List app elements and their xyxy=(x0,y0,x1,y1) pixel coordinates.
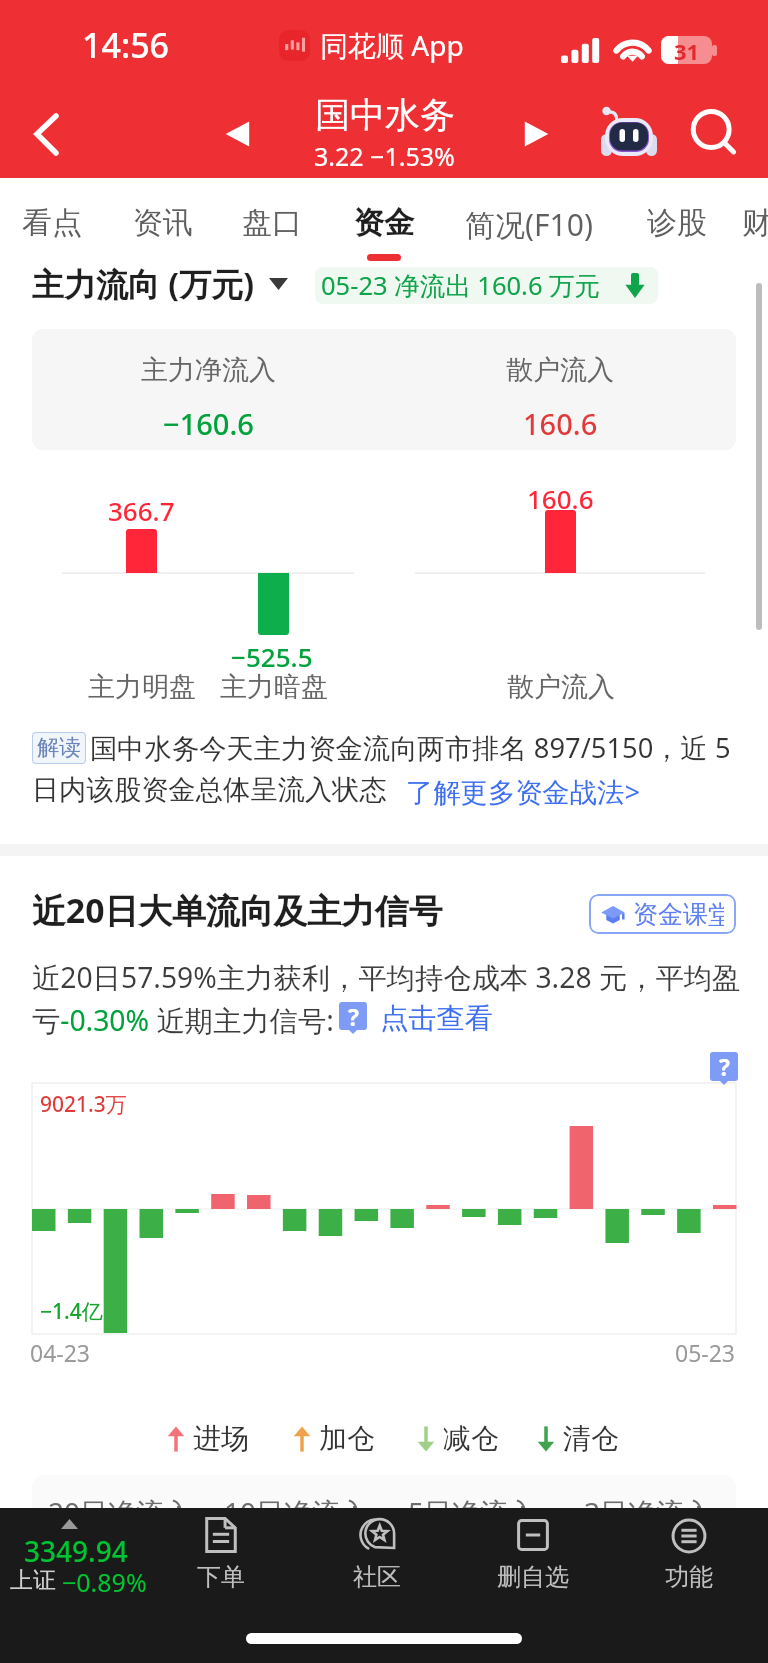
button[interactable]: 功能 xyxy=(634,1508,744,1608)
staticText: 简况(F10) xyxy=(465,204,593,245)
staticText: 功能 xyxy=(665,1562,713,1592)
staticText: 删自选 xyxy=(497,1562,569,1592)
staticText: 9021.3万 xyxy=(40,1090,127,1119)
staticText: 资讯 xyxy=(133,204,193,242)
button[interactable]: 清仓 xyxy=(537,1421,619,1456)
button[interactable]: Previous stock xyxy=(210,106,266,162)
staticText: 解读 xyxy=(37,734,81,762)
button[interactable]: AI assistant xyxy=(596,90,662,178)
staticText: 资金课堂 xyxy=(633,899,724,930)
staticText: 国中水务 xyxy=(315,93,455,137)
staticText: 近20日大单流向及主力信号 xyxy=(32,887,443,933)
staticText: 下单 xyxy=(197,1562,245,1592)
button[interactable]: 05-23 净流出 160.6 万元 xyxy=(315,267,658,304)
staticText: 散户流入 xyxy=(507,670,615,704)
staticText: 资金 xyxy=(354,204,414,242)
button[interactable]: 资金课堂 xyxy=(589,894,736,934)
staticText: 亏-0.30% 近期主力信号: xyxy=(32,1001,334,1040)
staticText: 3349.94 xyxy=(24,1532,128,1570)
button[interactable]: Search xyxy=(686,106,742,162)
staticText: 3日净流入 xyxy=(584,1493,713,1531)
button[interactable]: 诊股 xyxy=(623,178,731,262)
staticText: 日内该股资金总体呈流入状态 xyxy=(32,773,387,807)
staticText: 3.22 −1.53% xyxy=(314,139,455,173)
staticText: −525.5 xyxy=(231,639,313,674)
staticText: 160.6 xyxy=(523,404,598,443)
staticText: −0.89% xyxy=(62,1565,147,1599)
button[interactable]: 资讯 xyxy=(109,178,217,262)
staticText: 04-23 xyxy=(30,1337,91,1368)
button[interactable]: 加仓 xyxy=(293,1421,375,1456)
staticText: 看点 xyxy=(22,204,82,242)
staticText: 5日净流入 xyxy=(408,1493,537,1531)
button[interactable]: 点击查看 xyxy=(380,1001,494,1037)
staticText: 上证 xyxy=(10,1566,56,1595)
staticText: 主力净流入 xyxy=(141,353,276,387)
staticText: 盘口 xyxy=(242,204,302,242)
staticText: 05-23 净流出 160.6 万元 xyxy=(321,268,601,303)
staticText: 财 xyxy=(742,204,768,242)
staticText: 20日净流入 xyxy=(48,1493,193,1531)
button[interactable]: 财 xyxy=(727,178,768,262)
button[interactable]: 简况(F10) xyxy=(454,178,604,262)
staticText: 05-23 xyxy=(675,1337,736,1368)
staticText: 散户流入 xyxy=(506,353,614,387)
button[interactable]: 进场 xyxy=(167,1421,249,1456)
button[interactable]: 盘口 xyxy=(218,178,326,262)
staticText: ? xyxy=(719,1051,730,1082)
staticText: 近20日57.59%主力获利，平均持仓成本 3.28 元，平均盈 xyxy=(32,958,741,997)
staticText: 同花顺 App xyxy=(320,26,464,64)
staticText: 加仓 xyxy=(319,1421,375,1456)
button[interactable]: 3349.94 xyxy=(0,1508,160,1608)
staticText: −160.6 xyxy=(163,404,254,443)
button[interactable]: 社区 xyxy=(322,1508,432,1608)
staticText: 160.6 xyxy=(527,481,594,516)
button[interactable]: 下单 xyxy=(166,1508,276,1608)
staticText: 社区 xyxy=(353,1562,401,1592)
staticText: 进场 xyxy=(193,1421,249,1456)
button[interactable]: 减仓 xyxy=(417,1421,499,1456)
button[interactable]: Next stock xyxy=(508,106,564,162)
staticText: −1.4亿 xyxy=(40,1297,103,1326)
button[interactable]: 主力流向 (万元) xyxy=(32,262,288,306)
staticText: 主力明盘 xyxy=(88,670,196,704)
button[interactable]: 了解更多资金战法> xyxy=(406,773,640,810)
staticText: 减仓 xyxy=(443,1421,499,1456)
staticText: 诊股 xyxy=(647,204,707,242)
staticText: 14:56 xyxy=(82,22,170,68)
button[interactable]: 删自选 xyxy=(478,1508,588,1608)
staticText: ? xyxy=(348,1001,359,1032)
button[interactable]: 资金 xyxy=(330,178,438,262)
staticText: 10日净流入 xyxy=(224,1493,369,1531)
button[interactable]: Back xyxy=(8,90,84,178)
staticText: 31 xyxy=(674,36,700,64)
staticText: 主力流向 (万元) xyxy=(32,262,255,306)
staticText: 清仓 xyxy=(563,1421,619,1456)
staticText: 主力暗盘 xyxy=(220,670,328,704)
staticText: 国中水务今天主力资金流向两市排名 897/5150，近 5 xyxy=(90,729,731,766)
staticText: 366.7 xyxy=(108,493,175,528)
button[interactable]: 看点 xyxy=(0,178,106,262)
